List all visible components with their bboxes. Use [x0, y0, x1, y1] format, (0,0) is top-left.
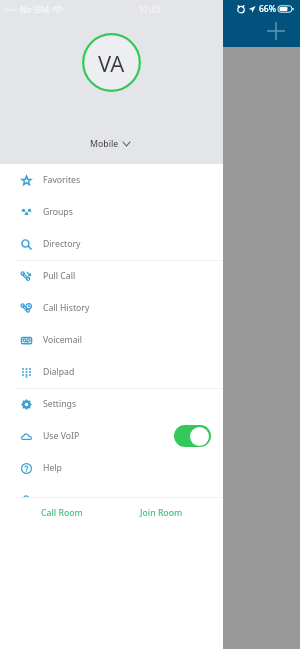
button[interactable]: Mobile: [84, 135, 136, 153]
button[interactable]: Voicemail: [0, 324, 223, 356]
button[interactable]: Directory: [0, 228, 223, 260]
button[interactable]: Favorites: [0, 164, 223, 196]
button[interactable]: Use VoIP toggle: [174, 425, 211, 447]
staticText: Favorites: [43, 174, 81, 186]
button[interactable]: Use VoIP: [0, 420, 223, 452]
staticText: Call Room: [41, 507, 83, 519]
staticText: VA: [98, 48, 125, 78]
button[interactable]: Call Room: [12, 498, 111, 527]
button[interactable]: Call History: [0, 292, 223, 324]
staticText: Join Room: [140, 507, 183, 519]
staticText: Dialpad: [43, 366, 75, 378]
button[interactable]: Add: [267, 22, 285, 40]
staticText: 66%: [259, 3, 276, 15]
staticText: Pull Call: [43, 270, 76, 282]
button[interactable]: Join Room: [111, 498, 211, 527]
button[interactable]: Groups: [0, 196, 223, 228]
button[interactable]: Dialpad: [0, 356, 223, 388]
button[interactable]: Settings: [0, 388, 223, 420]
staticText: Help: [43, 462, 62, 474]
staticText: Call History: [43, 302, 90, 314]
staticText: No SIM: [20, 4, 50, 16]
staticText: Mobile: [90, 138, 119, 150]
button[interactable]: Help: [0, 452, 223, 484]
button[interactable]: Profile VA: [82, 33, 141, 92]
staticText: Directory: [43, 238, 81, 250]
staticText: Voicemail: [43, 334, 83, 346]
staticText: Settings: [43, 398, 77, 410]
staticText: 17:42: [139, 4, 161, 16]
staticText: Use VoIP: [43, 430, 80, 442]
button[interactable]: Pull Call: [0, 260, 223, 292]
staticText: Groups: [43, 206, 73, 218]
